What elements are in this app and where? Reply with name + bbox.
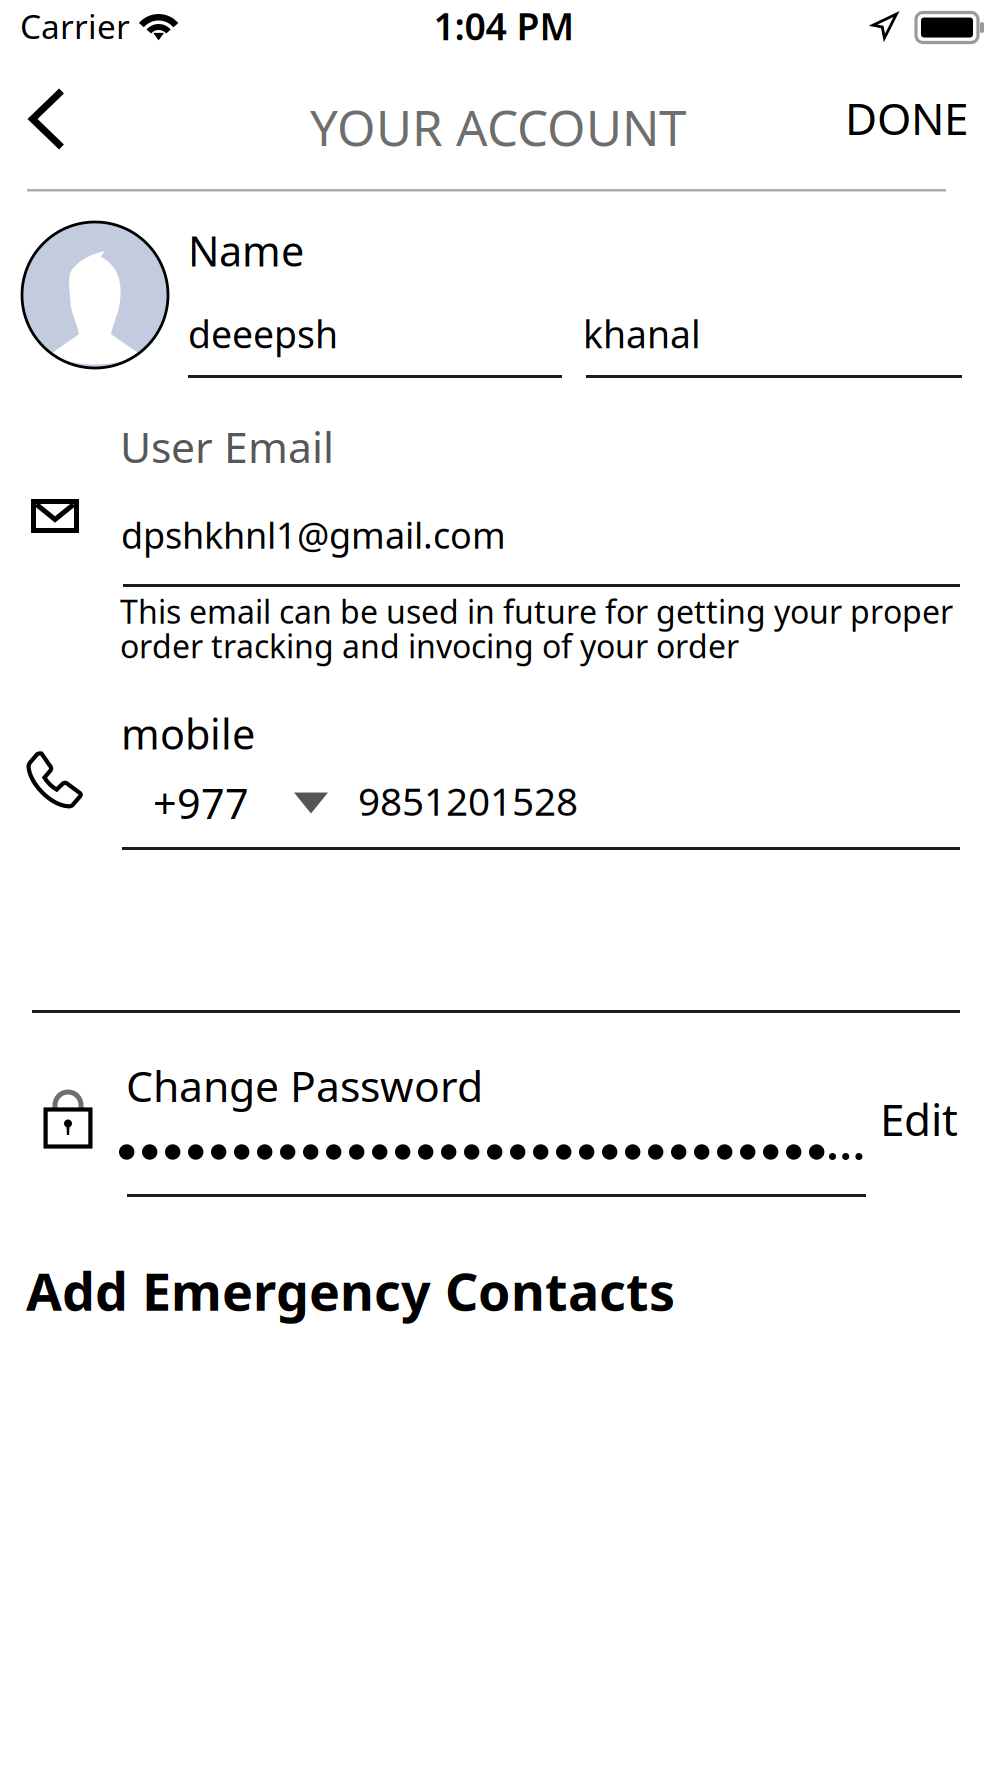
staticText: Edit bbox=[880, 1090, 958, 1148]
staticText: YOUR ACCOUNT bbox=[310, 94, 686, 159]
button[interactable]: DONE bbox=[828, 74, 968, 162]
staticText: +977 bbox=[153, 776, 249, 830]
staticText: This email can be used in future for get… bbox=[120, 590, 953, 632]
button[interactable]: Country code +977 bbox=[153, 772, 329, 834]
staticText: Name bbox=[188, 223, 304, 278]
staticText: Change Password bbox=[126, 1057, 483, 1114]
staticText: DONE bbox=[845, 89, 968, 147]
staticText: Carrier bbox=[20, 4, 130, 48]
button[interactable]: Add Emergency Contacts bbox=[26, 1256, 675, 1325]
staticText: mobile bbox=[121, 706, 255, 761]
staticText: khanal bbox=[583, 309, 701, 359]
staticText: dpshkhnl1@gmail.com bbox=[121, 511, 506, 559]
button[interactable]: Password bbox=[119, 1144, 866, 1197]
staticText: deeepsh bbox=[188, 309, 338, 359]
staticText: Add Emergency Contacts bbox=[26, 1256, 675, 1325]
button[interactable]: deeepsh bbox=[188, 302, 562, 378]
button[interactable]: Edit bbox=[838, 1089, 958, 1149]
staticText: 9851201528 bbox=[358, 775, 578, 826]
button[interactable]: 9851201528 bbox=[357, 767, 960, 850]
button[interactable]: khanal bbox=[586, 302, 962, 378]
staticText: User Email bbox=[120, 418, 334, 475]
button[interactable]: Back bbox=[0, 69, 97, 169]
button[interactable]: dpshkhnl1@gmail.com bbox=[121, 500, 960, 587]
staticText: order tracking and invocing of your orde… bbox=[120, 624, 739, 667]
staticText: 1:04 PM bbox=[433, 1, 574, 51]
